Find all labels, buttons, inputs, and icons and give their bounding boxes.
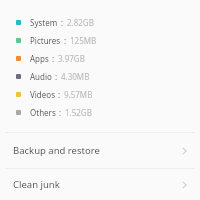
staticText: : <box>58 89 61 100</box>
staticText: : <box>55 71 58 82</box>
staticText: Others <box>30 107 56 118</box>
staticText: Apps <box>30 53 49 64</box>
staticText: Clean junk <box>13 178 60 191</box>
staticText: 3.97GB <box>58 53 85 64</box>
button[interactable]: Others <box>0 103 200 121</box>
staticText: 9.57MB <box>64 89 93 100</box>
button[interactable]: Videos <box>0 85 200 103</box>
staticText: : <box>52 53 55 64</box>
button[interactable]: Clean junk <box>0 169 200 200</box>
staticText: Pictures <box>30 35 61 46</box>
other: Open <box>179 180 189 190</box>
staticText: : <box>59 107 62 118</box>
staticText: 4.30MB <box>61 71 90 82</box>
staticText: Backup and restore <box>13 144 100 157</box>
button[interactable]: System <box>0 13 200 31</box>
staticText: System <box>30 17 58 28</box>
staticText: Audio <box>30 71 52 82</box>
button[interactable]: Pictures <box>0 31 200 49</box>
button[interactable]: Apps <box>0 49 200 67</box>
staticText: Videos <box>30 89 55 100</box>
other: Open <box>179 146 189 156</box>
staticText: 1.52GB <box>65 107 92 118</box>
staticText: : <box>61 17 64 28</box>
button[interactable]: Backup and restore <box>0 133 200 168</box>
staticText: : <box>64 35 67 46</box>
button[interactable]: Audio <box>0 67 200 85</box>
staticText: 2.82GB <box>67 17 94 28</box>
staticText: 125MB <box>70 35 97 46</box>
